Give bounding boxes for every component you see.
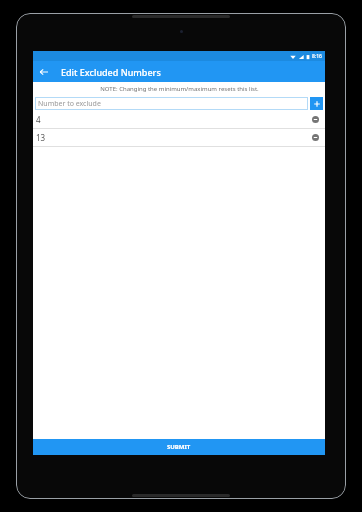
button[interactable]: 4	[33, 111, 325, 128]
button[interactable]: Number to exclude	[35, 97, 308, 110]
button[interactable]: 13	[33, 129, 325, 146]
button[interactable]: Back	[33, 61, 54, 82]
button[interactable]: Remove 4	[309, 113, 322, 126]
button[interactable]: SUBMIT	[33, 439, 325, 455]
staticText: SUBMIT	[167, 443, 191, 451]
button[interactable]: Remove 13	[309, 131, 322, 144]
staticText: 8:16	[312, 53, 322, 60]
staticText: 4	[36, 114, 41, 125]
staticText: 13	[36, 132, 46, 143]
staticText: NOTE: Changing the minimum/maximum reset…	[100, 85, 259, 93]
staticText: Edit Excluded Numbers	[61, 66, 161, 78]
staticText: Number to exclude	[38, 99, 101, 109]
button[interactable]: Add number	[310, 97, 323, 110]
